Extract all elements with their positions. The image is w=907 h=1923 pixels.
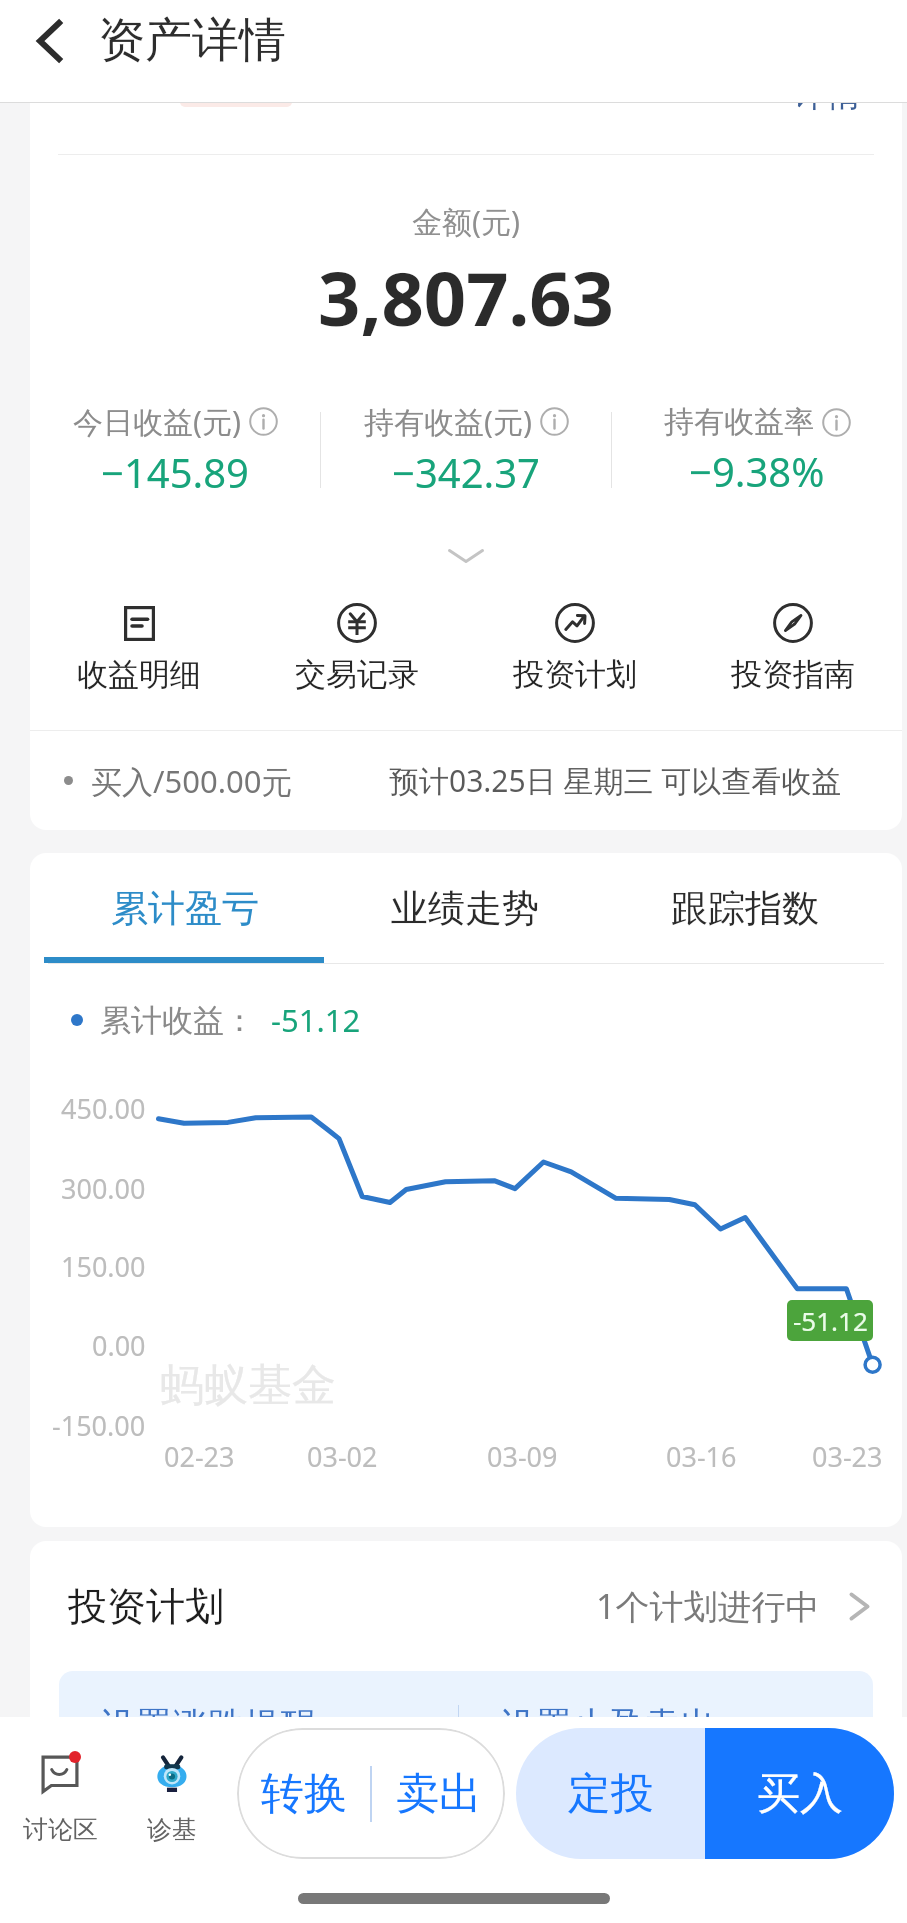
staticText: 跟踪指数 — [671, 885, 819, 932]
button[interactable]: 持有收益(元) — [321, 401, 611, 499]
staticText: 诊基 — [147, 1814, 197, 1845]
staticText: 03-23 — [812, 1438, 883, 1475]
staticText: 收益明细 — [77, 655, 201, 694]
staticText: 投资计划 — [68, 1582, 224, 1631]
button[interactable]: 转换 — [237, 1728, 370, 1859]
staticText: 定投 — [568, 1767, 654, 1821]
staticText: 预计03.25日 星期三 可以查看收益 — [389, 760, 842, 801]
staticText: -150.00 — [52, 1407, 146, 1444]
button[interactable]: Back — [0, 0, 98, 102]
button[interactable]: 业绩走势 — [325, 853, 605, 963]
staticText: 设置止盈卖出 › — [500, 1700, 746, 1749]
staticText: 交易记录 — [295, 655, 419, 694]
button[interactable]: 定投 — [516, 1728, 705, 1859]
staticText: 转换 — [261, 1767, 347, 1821]
staticText: 累计收益： — [100, 1001, 255, 1040]
staticText: 蚂蚁基金 — [160, 1358, 336, 1413]
staticText: 0.00 — [92, 1327, 146, 1364]
staticText: 02-23 — [164, 1438, 235, 1475]
button[interactable]: 投资计划 — [466, 603, 684, 694]
staticText: 投资计划 — [513, 655, 637, 694]
staticText: 详情 > — [793, 70, 890, 116]
button[interactable]: 投资指南 — [684, 603, 902, 694]
staticText: −342.37 — [392, 445, 540, 499]
staticText: 150.00 — [61, 1248, 146, 1285]
staticText: 资产详情 — [98, 11, 286, 70]
staticText: 03-02 — [307, 1438, 378, 1475]
staticText: -51.12 — [271, 999, 361, 1041]
staticText: −9.38% — [689, 444, 825, 498]
staticText: 投资指南 — [731, 655, 855, 694]
staticText: 03-09 — [487, 1438, 558, 1475]
staticText: 金额(元) — [30, 201, 902, 242]
staticText: 持有收益(元) — [364, 401, 532, 442]
staticText: 买入/500.00元 — [91, 760, 293, 802]
button[interactable]: 买入 — [705, 1728, 894, 1859]
staticText: 今日收益(元) — [73, 401, 241, 442]
button[interactable]: 累计盈亏 — [45, 853, 325, 963]
staticText: 300.00 — [61, 1170, 146, 1207]
staticText: 3,807.63 — [30, 247, 902, 348]
button[interactable]: 收益明细 — [30, 603, 248, 694]
button[interactable]: 卖出 — [372, 1728, 505, 1859]
staticText: 设置涨跌提醒 › — [100, 1700, 346, 1749]
button[interactable]: 讨论区 — [4, 1742, 116, 1845]
button[interactable]: Expand — [30, 545, 902, 567]
staticText: -51.12 — [793, 1303, 868, 1338]
button[interactable]: 持有收益率 — [612, 403, 902, 498]
button[interactable]: 诊基 — [116, 1742, 228, 1845]
staticText: 累计盈亏 — [111, 885, 259, 932]
staticText: 卖出 — [396, 1767, 482, 1821]
staticText: 03-16 — [666, 1438, 737, 1475]
staticText: 450.00 — [61, 1090, 146, 1127]
button[interactable]: 跟踪指数 — [605, 853, 885, 963]
staticText: 买入 — [757, 1767, 843, 1821]
staticText: 讨论区 — [23, 1814, 98, 1845]
staticText: 业绩走势 — [391, 885, 539, 932]
staticText: 1个计划进行中 — [596, 1583, 820, 1629]
button[interactable]: 投资计划 — [68, 1541, 870, 1671]
button[interactable]: 交易记录 — [248, 603, 466, 694]
button[interactable]: 今日收益(元) — [30, 401, 320, 499]
staticText: −145.89 — [101, 445, 249, 499]
button[interactable]: 买入/500.00元 — [30, 731, 902, 830]
staticText: 持有收益率 — [664, 403, 814, 441]
